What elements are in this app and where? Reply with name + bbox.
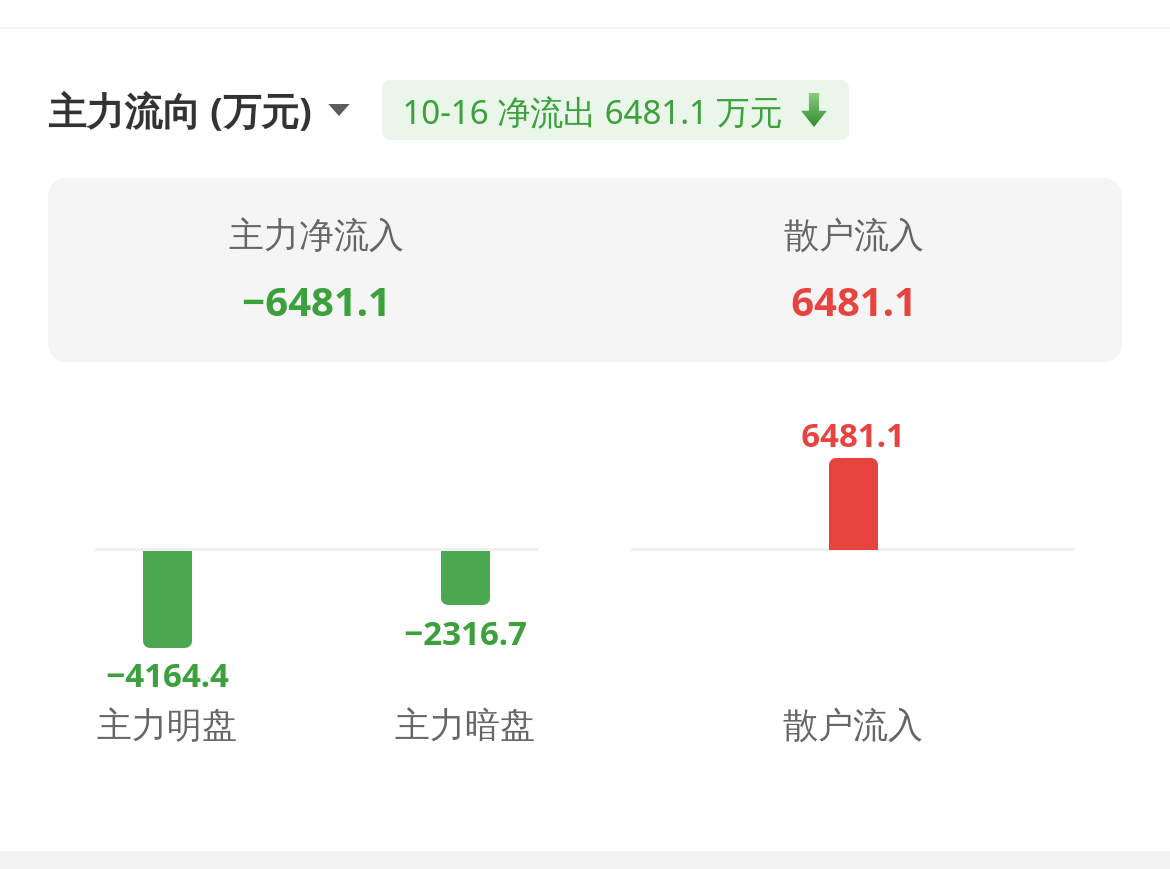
staticText: 6481.1 (801, 412, 905, 457)
button[interactable]: 主力流向 (万元) (48, 84, 356, 136)
other: Change unit (326, 97, 352, 123)
staticText: 主力明盘 (97, 703, 237, 747)
staticText: −2316.7 (404, 610, 527, 655)
button[interactable]: 10-16 净流出 6481.1 万元 (382, 80, 849, 140)
staticText: 主力流向 (万元) (48, 84, 312, 136)
staticText: −6481.1 (242, 273, 391, 327)
staticText: −4164.4 (106, 652, 229, 697)
staticText: 6481.1 (791, 273, 917, 327)
button[interactable]: 主力净流入 (48, 178, 1122, 362)
staticText: 散户流入 (783, 703, 923, 747)
staticText: 10-16 净流出 6481.1 万元 (402, 89, 783, 131)
staticText: 主力暗盘 (395, 703, 535, 747)
staticText: 散户流入 (784, 213, 924, 257)
staticText: 主力净流入 (229, 213, 404, 257)
